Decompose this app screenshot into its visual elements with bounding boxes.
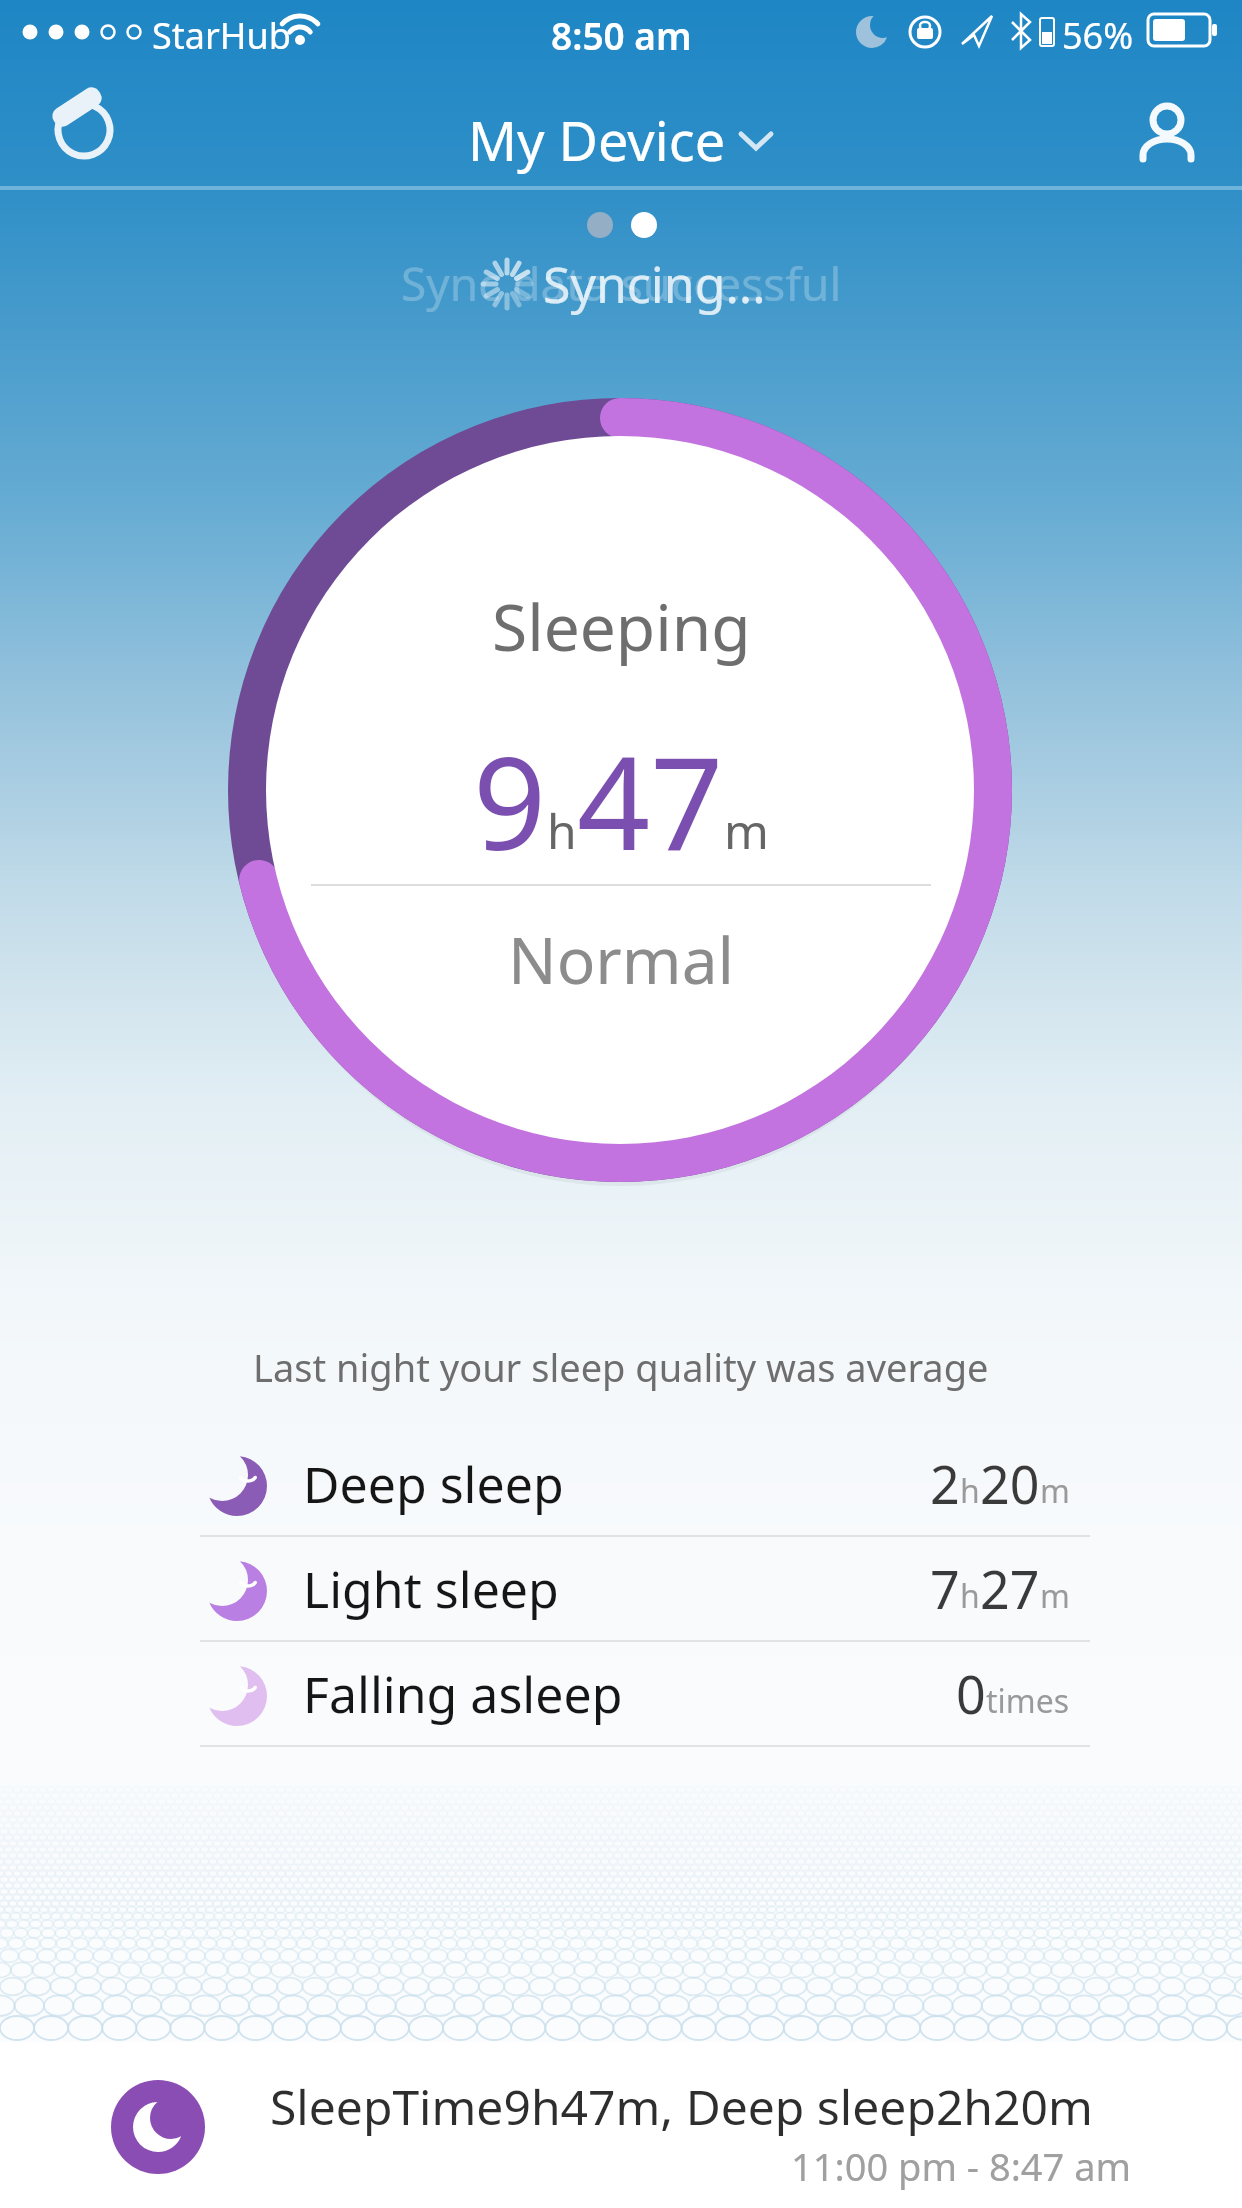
staticText: 56% bbox=[1062, 11, 1134, 60]
staticText: 20 bbox=[980, 1448, 1040, 1519]
staticText: 2 bbox=[930, 1448, 960, 1519]
button[interactable] bbox=[44, 84, 120, 160]
staticText: Falling asleep bbox=[303, 1660, 623, 1728]
staticText: Deep sleep bbox=[303, 1450, 564, 1518]
staticText: 27 bbox=[980, 1553, 1040, 1624]
staticText: Syncing... bbox=[543, 250, 766, 318]
staticText: My Device bbox=[468, 103, 726, 177]
staticText: 9 bbox=[473, 713, 547, 887]
button[interactable] bbox=[1132, 95, 1202, 165]
staticText: 8:50 am bbox=[551, 10, 692, 60]
staticText: h bbox=[960, 1574, 980, 1618]
staticText: Light sleep bbox=[303, 1555, 559, 1623]
staticText: SleepTime9h47m, Deep sleep2h20m bbox=[270, 2074, 1093, 2139]
staticText: m bbox=[724, 798, 769, 863]
button[interactable]: My Device bbox=[468, 103, 774, 177]
staticText: Last night your sleep quality was averag… bbox=[253, 1341, 989, 1393]
staticText: Sleeping bbox=[492, 583, 751, 670]
staticText: m bbox=[1040, 1469, 1070, 1513]
button[interactable]: Falling asleep bbox=[200, 1642, 1090, 1745]
button[interactable]: Light sleep bbox=[200, 1537, 1090, 1640]
staticText: m bbox=[1040, 1574, 1070, 1618]
staticText: h bbox=[547, 798, 577, 863]
staticText: Sync data successful bbox=[401, 252, 842, 315]
button[interactable]: SleepTime9h47m, Deep sleep2h20m bbox=[0, 2042, 1242, 2208]
staticText: 0 bbox=[956, 1658, 986, 1729]
staticText: h bbox=[960, 1469, 980, 1513]
staticText: 11:00 pm - 8:47 am bbox=[791, 2140, 1132, 2192]
staticText: 47 bbox=[577, 713, 724, 887]
staticText: 7 bbox=[930, 1553, 960, 1624]
staticText: times bbox=[986, 1679, 1070, 1723]
button[interactable]: Deep sleep bbox=[200, 1432, 1090, 1535]
staticText: Normal bbox=[508, 916, 735, 1003]
staticText: StarHub bbox=[152, 11, 291, 60]
